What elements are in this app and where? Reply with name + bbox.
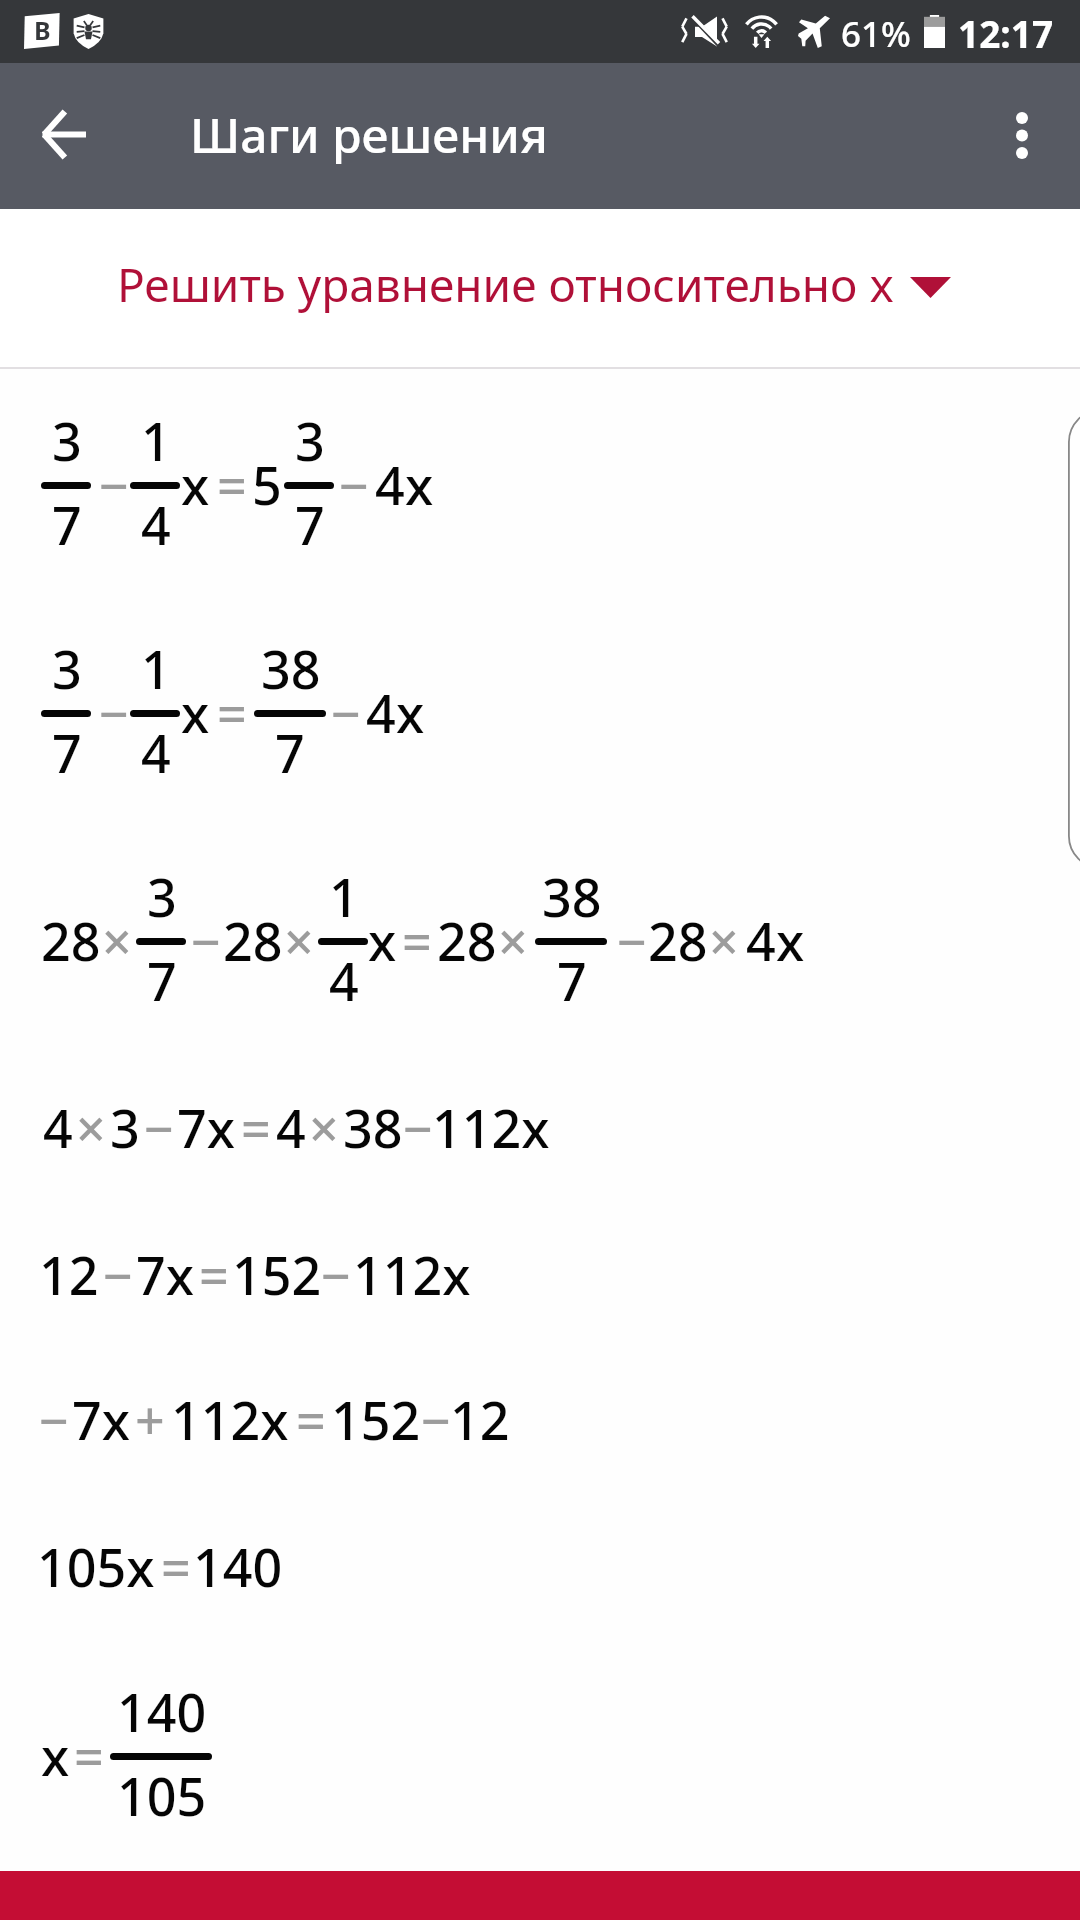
staticText: Решить уравнение относительно x [117,253,894,316]
staticText: 152 [232,1239,322,1310]
staticText: − [339,449,369,520]
staticText: 61% [841,10,911,58]
staticText: = [296,1384,326,1455]
staticText: − [39,1384,69,1455]
staticText: 28 [648,905,708,976]
button[interactable] [0,371,1080,600]
staticText: 4 [141,489,171,560]
staticText: 7 [275,717,305,788]
staticText: 4 [141,717,171,788]
staticText: 112x [353,1239,471,1310]
button[interactable]: Hint [1068,409,1080,869]
staticText: 7 [52,717,82,788]
button[interactable] [0,1660,1080,1871]
staticText: 7x [136,1239,194,1310]
staticText: = [74,1720,104,1791]
staticText: × [284,905,314,976]
staticText: Шаги решения [190,102,548,167]
button[interactable] [0,1055,1080,1202]
staticText: 28 [437,905,497,976]
staticText: − [421,1384,451,1455]
staticText: x [396,677,425,748]
staticText: 28 [41,905,101,976]
button[interactable]: More options [977,90,1067,180]
staticText: − [191,905,221,976]
staticText: 38 [343,1092,403,1163]
staticText: 7 [295,489,325,560]
staticText: B [34,13,51,47]
staticText: = [161,1531,191,1602]
staticText: 7 [557,945,587,1016]
staticText: − [617,905,647,976]
staticText: 1 [141,405,171,476]
staticText: − [321,1239,351,1310]
button[interactable]: Решить уравнение относительно x [0,209,1080,367]
staticText: 7 [52,489,82,560]
staticText: 12 [39,1239,99,1310]
staticText: − [144,1092,174,1163]
button[interactable] [0,1349,1080,1494]
staticText: × [102,905,132,976]
staticText: 4 [329,945,359,1016]
staticText: 3 [52,405,82,476]
staticText: x [181,677,210,748]
staticText: 140 [117,1676,207,1747]
staticText: 3 [295,405,325,476]
staticText: x [405,449,434,520]
staticText: 4 [366,677,396,748]
staticText: x [41,1720,70,1791]
button[interactable]: Back [18,89,108,179]
staticText: 3 [147,861,177,932]
staticText: − [99,449,129,520]
staticText: 38 [542,861,602,932]
staticText: 4 [43,1092,73,1163]
staticText: × [309,1092,339,1163]
staticText: 112x [432,1092,550,1163]
staticText: − [103,1239,133,1310]
staticText: 1 [141,633,171,704]
staticText: x [776,905,805,976]
staticText: 105 [117,1760,207,1831]
button[interactable] [0,1494,1080,1660]
button[interactable] [0,1202,1080,1349]
staticText: 7x [72,1384,130,1455]
staticText: 4 [276,1092,306,1163]
staticText: − [403,1092,433,1163]
staticText: 28 [223,905,283,976]
staticText: 3 [52,633,82,704]
staticText: 1 [329,861,359,932]
staticText: 105x [37,1531,155,1602]
staticText: × [498,905,528,976]
staticText: − [99,677,129,748]
staticText: 38 [261,633,321,704]
staticText: 5 [252,449,282,520]
staticText: × [709,905,739,976]
staticText: 112x [171,1384,289,1455]
staticText: × [76,1092,106,1163]
staticText: + [135,1384,165,1455]
staticText: = [217,449,247,520]
staticText: = [402,905,432,976]
staticText: 4 [375,449,405,520]
staticText: 7x [177,1092,235,1163]
staticText: x [181,449,210,520]
staticText: x [368,905,397,976]
staticText: 12 [450,1384,510,1455]
staticText: 152 [331,1384,421,1455]
staticText: = [217,677,247,748]
staticText: 7 [147,945,177,1016]
button[interactable] [0,829,1080,1055]
button[interactable] [0,600,1080,829]
staticText: 12:17 [958,8,1054,58]
staticText: 4 [746,905,776,976]
staticText: − [331,677,361,748]
staticText: = [241,1092,271,1163]
staticText: 140 [193,1531,283,1602]
staticText: = [199,1239,229,1310]
staticText: 3 [110,1092,140,1163]
